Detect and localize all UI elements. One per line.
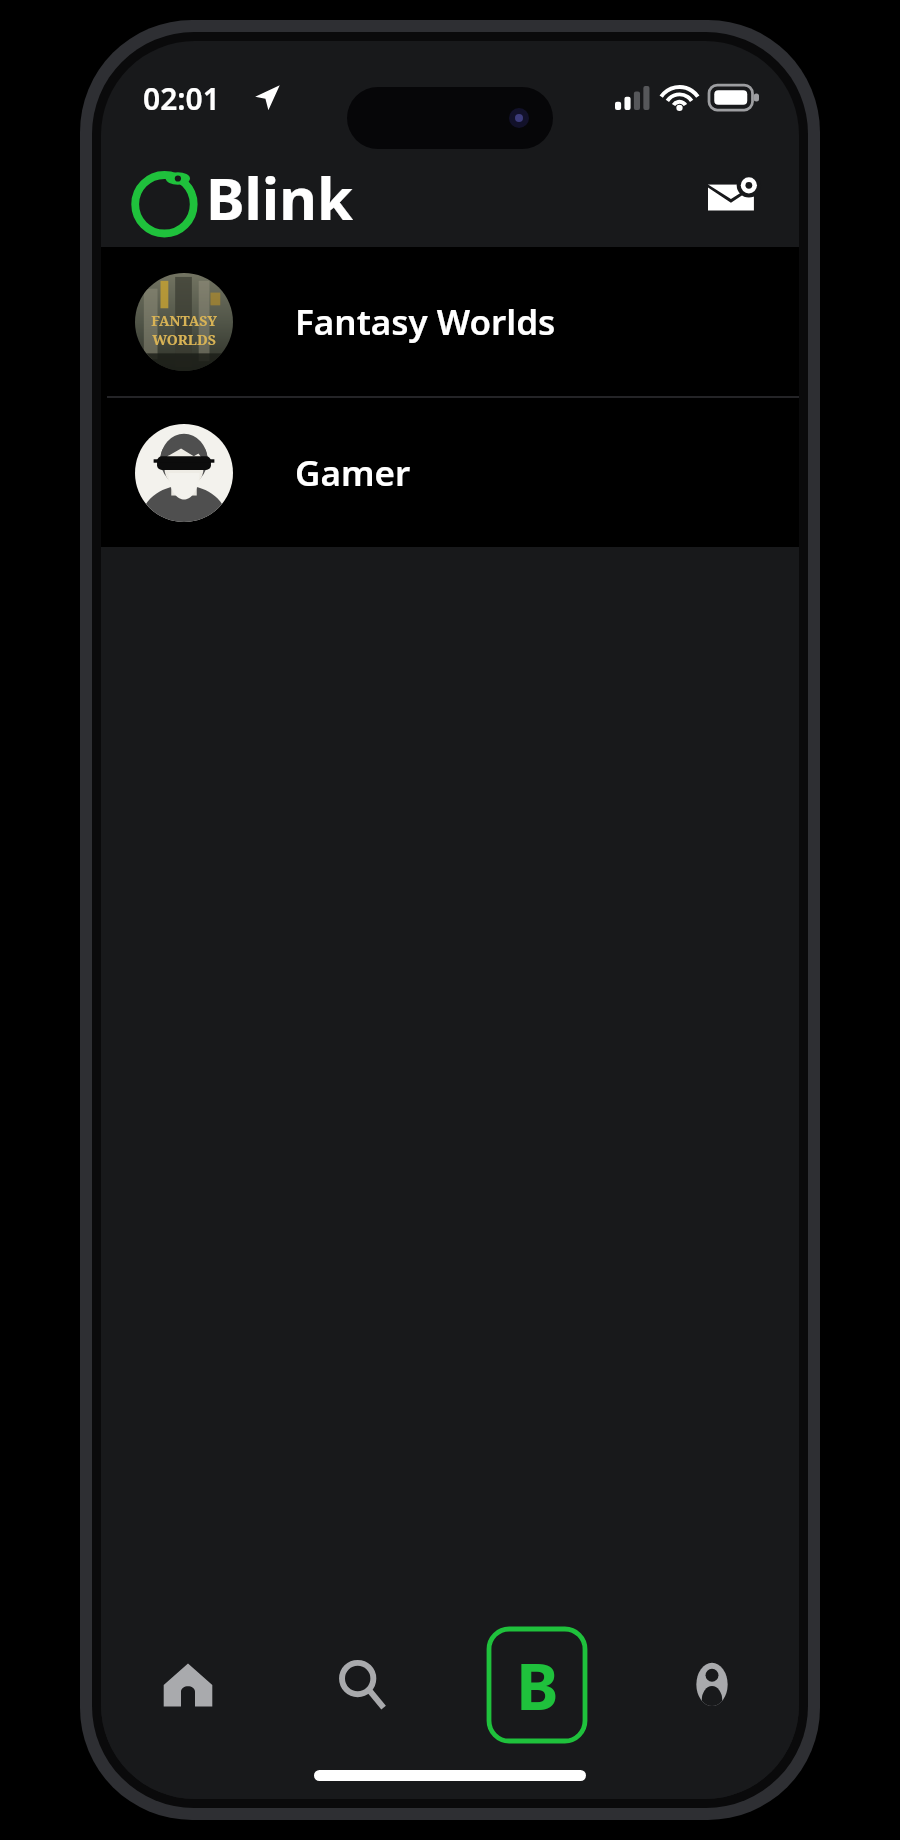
button[interactable]: Profile: [624, 1619, 799, 1751]
staticText: Gamer: [295, 449, 411, 497]
button[interactable]: Blink: [449, 1619, 624, 1751]
button[interactable]: Home: [101, 1619, 275, 1751]
staticText: WORLDS: [152, 330, 216, 349]
staticText: Blink: [206, 158, 353, 237]
staticText: 02:01: [143, 78, 220, 119]
button[interactable]: Search: [275, 1619, 449, 1751]
staticText: FANTASY: [151, 311, 217, 330]
button[interactable]: Blink: [127, 158, 353, 237]
staticText: Fantasy Worlds: [295, 298, 556, 346]
button[interactable]: Gamer: [101, 398, 799, 547]
staticText: B: [516, 1642, 559, 1729]
button[interactable]: Messages: [697, 159, 773, 235]
button[interactable]: FANTASY: [101, 247, 799, 396]
